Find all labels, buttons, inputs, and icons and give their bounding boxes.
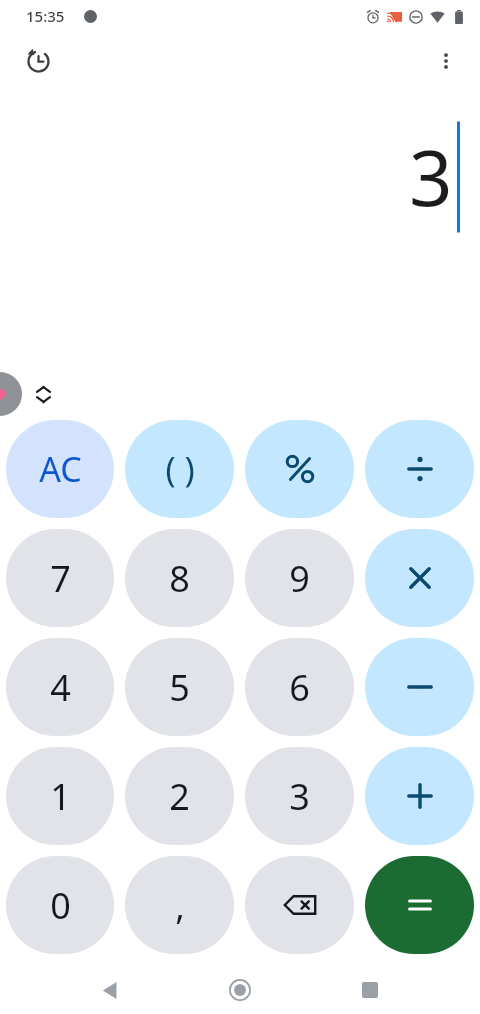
staticText: 3 [409,125,453,229]
button[interactable]: 9 [245,529,354,627]
staticText: 6 [289,663,310,712]
staticText: AC [39,446,82,492]
staticText: 1 [50,772,71,821]
button[interactable]: Expand [26,377,60,411]
button[interactable]: Multiply [365,529,474,627]
button[interactable]: , [125,856,234,954]
button[interactable]: Percent [245,420,354,518]
staticText: 15:35 [26,6,65,26]
button[interactable]: Back [88,968,132,1012]
button[interactable]: Minus [365,638,474,736]
button[interactable]: 3 [245,747,354,845]
button[interactable]: Home [218,968,262,1012]
button[interactable]: Divide [365,420,474,518]
button[interactable]: 0 [6,856,114,954]
button[interactable]: Backspace [245,856,354,954]
button[interactable]: 2 [125,747,234,845]
button[interactable]: Recents [348,968,392,1012]
staticText: 0 [50,881,71,930]
button[interactable]: History [14,37,62,85]
button[interactable]: Equals [365,856,474,954]
button[interactable]: ( ) [125,420,234,518]
staticText: 2 [169,772,190,821]
button[interactable]: 4 [6,638,114,736]
staticText: ( ) [165,446,195,492]
staticText: 7 [50,554,71,603]
staticText: 8 [169,554,190,603]
staticText: 3 [289,772,310,821]
staticText: 9 [289,554,310,603]
button[interactable]: 1 [6,747,114,845]
button[interactable]: More options [422,37,470,85]
staticText: , [175,881,185,930]
button[interactable]: 7 [6,529,114,627]
staticText: 5 [169,663,190,712]
button[interactable]: 5 [125,638,234,736]
staticText: 4 [50,663,71,712]
button[interactable]: 6 [245,638,354,736]
button[interactable]: AC [6,420,114,518]
button[interactable]: Plus [365,747,474,845]
button[interactable]: 8 [125,529,234,627]
